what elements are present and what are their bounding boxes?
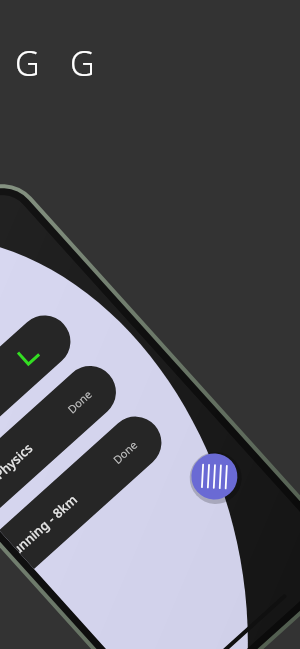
button[interactable]: Phone mockup showing task list app [0,0,300,649]
